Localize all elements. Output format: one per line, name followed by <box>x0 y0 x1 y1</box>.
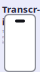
staticText: Transcription <box>2 3 40 28</box>
staticText: Turn messages & meetings into Text in se… <box>2 29 35 45</box>
